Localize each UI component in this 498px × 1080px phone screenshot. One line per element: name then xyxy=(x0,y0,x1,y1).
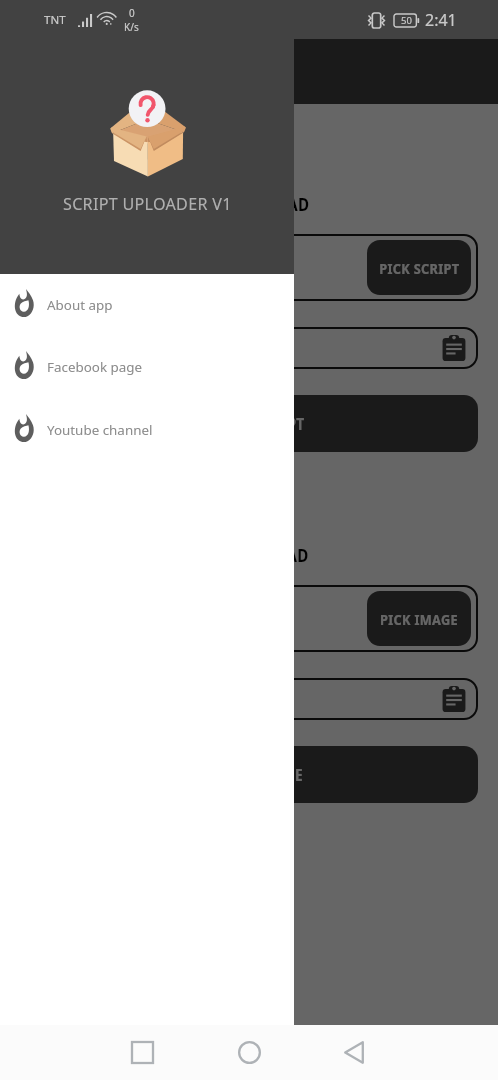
button[interactable] xyxy=(0,39,498,1025)
staticText: TNT xyxy=(44,12,66,28)
button[interactable]: Home xyxy=(223,1026,275,1078)
button[interactable]: UPLOAD IMAGE xyxy=(20,746,478,803)
button[interactable]: Back xyxy=(328,1026,380,1078)
staticText: About app xyxy=(47,296,113,314)
staticText: K/s xyxy=(124,20,139,34)
button[interactable]: Recent apps xyxy=(116,1026,168,1078)
button[interactable]: PICK SCRIPT xyxy=(367,240,471,295)
button[interactable]: Youtube channel xyxy=(0,399,294,461)
staticText: PICK SCRIPT xyxy=(379,258,460,278)
staticText: Youtube channel xyxy=(47,421,153,439)
button[interactable]: About app xyxy=(0,274,294,336)
button[interactable]: Facebook page xyxy=(0,336,294,398)
staticText: PICK IMAGE xyxy=(380,609,458,629)
staticText: Facebook page xyxy=(47,358,143,376)
button[interactable]: Paste from clipboard xyxy=(438,683,470,715)
button[interactable]: Paste from clipboard xyxy=(438,332,470,364)
staticText: 0 xyxy=(129,6,135,20)
staticText: 2:41 xyxy=(425,9,457,31)
staticText: SCRIPT UPLOADER V1 xyxy=(63,193,232,215)
staticText: UPLOAD IMAGE xyxy=(195,764,303,786)
button[interactable]: UPLOAD SCRIPT xyxy=(20,395,478,452)
staticText: IMAGE UPLOAD xyxy=(190,543,309,568)
button[interactable]: PICK IMAGE xyxy=(367,591,471,646)
staticText: SCRIPT UPLOAD xyxy=(188,192,309,217)
staticText: 50 xyxy=(401,14,412,27)
staticText: UPLOAD SCRIPT xyxy=(194,413,305,435)
